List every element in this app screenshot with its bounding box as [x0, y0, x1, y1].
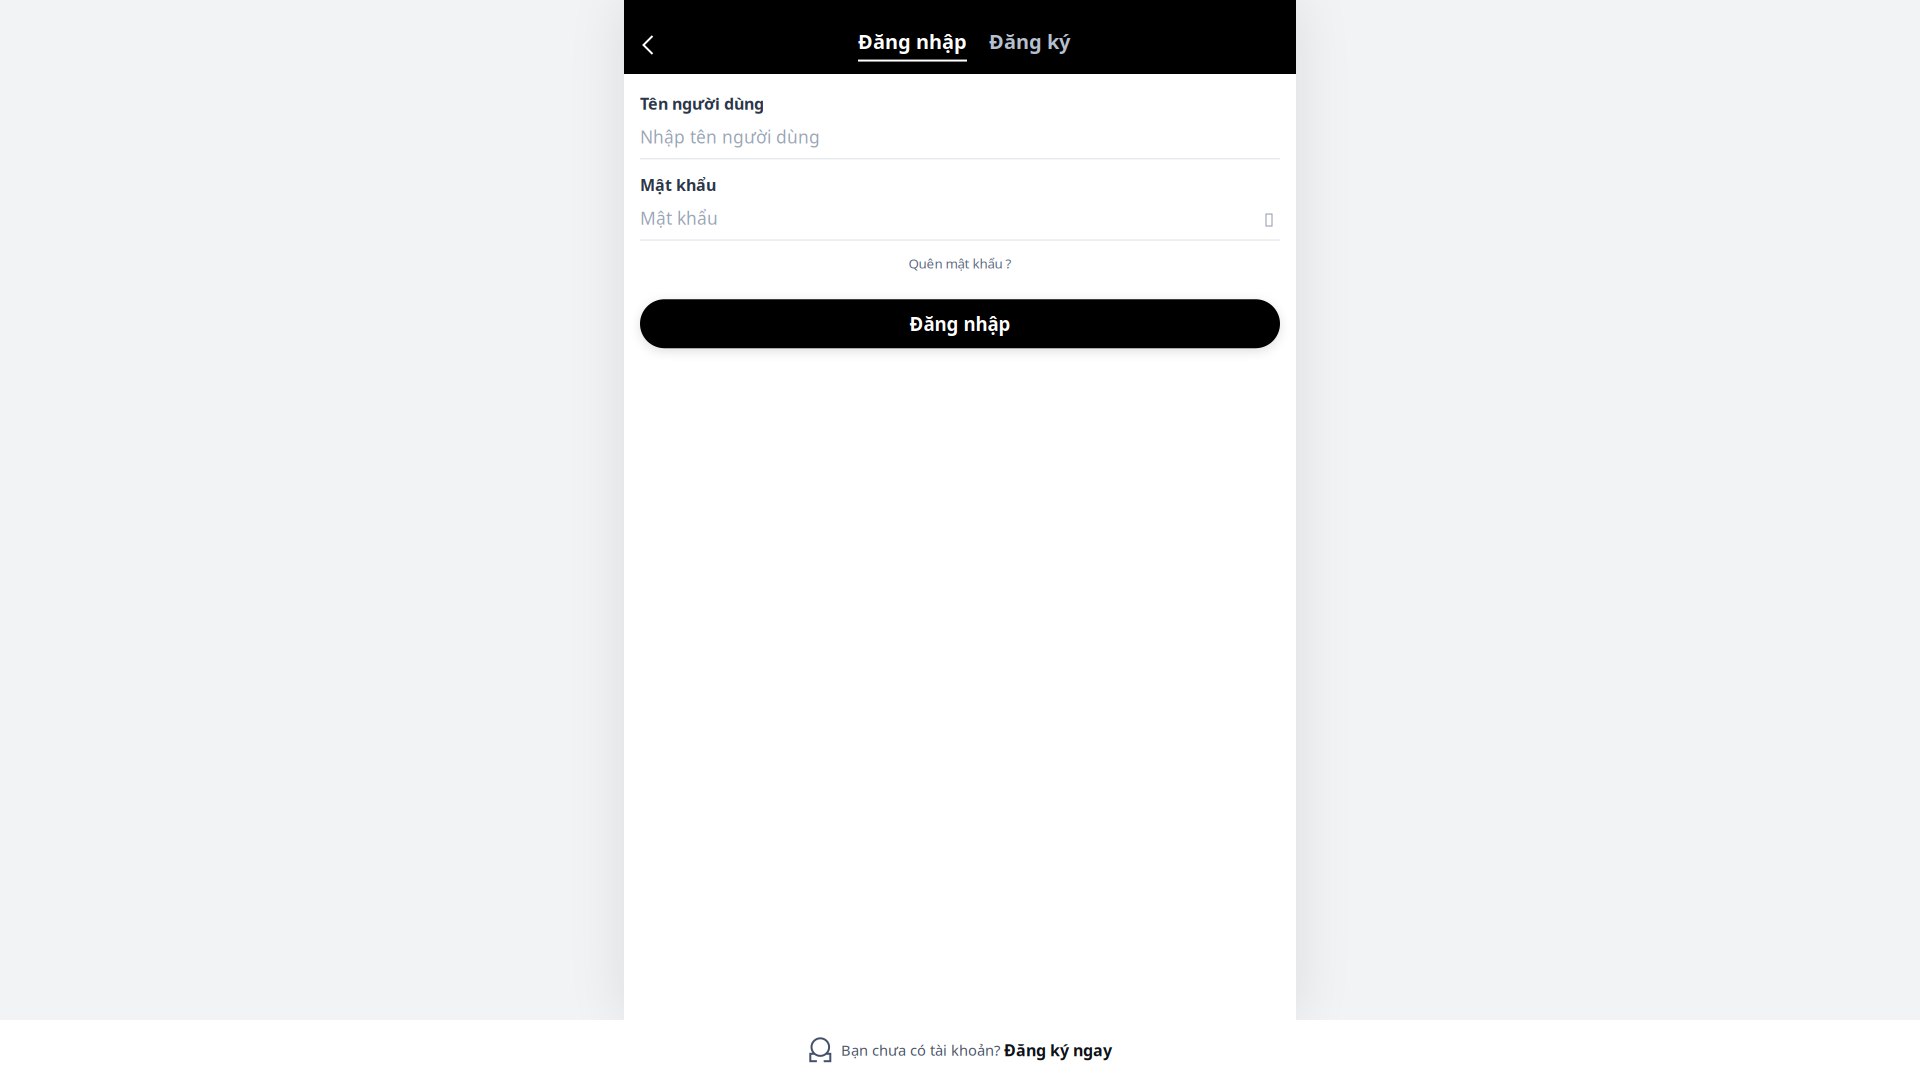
button[interactable]: Back: [626, 23, 670, 67]
staticText: Tên người dùng: [640, 93, 764, 114]
staticText: Đăng ký: [989, 28, 1070, 55]
staticText: Đăng ký ngay: [1004, 1039, 1112, 1061]
staticText: Mật khẩu: [640, 174, 716, 195]
staticText: Bạn chưa có tài khoản?: [841, 1040, 1004, 1060]
staticText: Đăng nhập: [858, 28, 967, 55]
button[interactable]: Đăng ký: [989, 28, 1070, 62]
button[interactable]: Đăng nhập: [858, 28, 967, 62]
staticText: Quên mật khẩu ?: [908, 254, 1011, 272]
button[interactable]: Bạn chưa có tài khoản?: [0, 1020, 1920, 1080]
button[interactable]: Quên mật khẩu ?: [640, 240, 1280, 282]
staticText: Mật khẩu: [640, 206, 718, 229]
staticText: Đăng nhập: [909, 311, 1010, 336]
button[interactable]: Show password: [1258, 208, 1280, 228]
button[interactable]: Đăng nhập: [640, 299, 1280, 348]
staticText: Nhập tên người dùng: [640, 125, 820, 148]
